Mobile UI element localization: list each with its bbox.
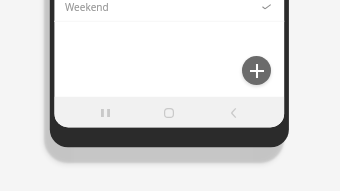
button[interactable]: Recent apps	[83, 97, 127, 128]
button[interactable]: Home	[147, 97, 191, 128]
button[interactable]: Add	[242, 56, 271, 85]
staticText: Weekend	[65, 0, 109, 14]
button[interactable]: Weekend	[54, 0, 284, 14]
button[interactable]: Back	[211, 97, 255, 128]
